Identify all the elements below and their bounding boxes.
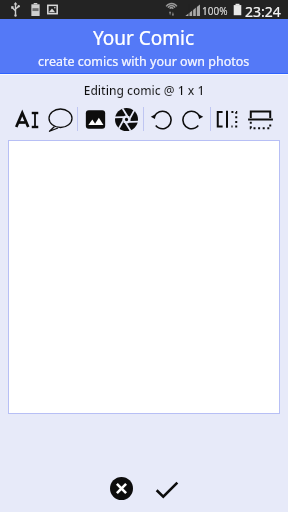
button[interactable]: Add photo: [80, 104, 110, 134]
button[interactable]: Undo: [146, 104, 176, 134]
button[interactable]: Cancel: [105, 472, 138, 505]
button[interactable]: Done: [150, 472, 183, 505]
staticText: Your Comic: [93, 25, 195, 51]
staticText: 23:24: [245, 2, 281, 21]
button[interactable]: Speech bubble: [45, 104, 75, 134]
button[interactable]: Add column: [212, 104, 242, 134]
button[interactable]: Redo: [177, 104, 207, 134]
staticText: 100%: [202, 4, 228, 18]
button[interactable]: Text tool: [13, 104, 43, 134]
button[interactable]: Camera: [111, 104, 141, 134]
staticText: Editing comic @ 1 x 1: [0, 82, 288, 98]
staticText: create comics with your own photos: [38, 53, 250, 70]
button[interactable]: Add row: [245, 104, 275, 134]
